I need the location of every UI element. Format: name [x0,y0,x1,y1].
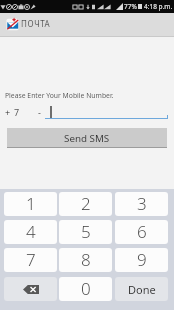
button[interactable]: Done [115,277,168,301]
button[interactable]: 0 [59,277,112,301]
staticText: 77% [124,2,137,11]
button[interactable]: 4 [4,220,57,244]
staticText: 8 [81,248,91,271]
staticText: 0 [81,277,91,300]
staticText: Done [128,282,156,297]
staticText: 4 [26,220,36,243]
staticText: 7 [26,248,36,271]
staticText: 1 [26,192,36,215]
staticText: 6 [137,220,147,243]
staticText: 7 [14,106,20,118]
staticText: 9 [137,248,147,271]
button[interactable]: 1 [4,192,57,216]
staticText: Send SMS [64,132,110,145]
button[interactable]: 9 [115,248,168,272]
button[interactable]: 6 [115,220,168,244]
button[interactable]: Send SMS [7,128,167,148]
staticText: 3 [137,192,147,215]
button[interactable]: 8 [59,248,112,272]
staticText: Please Enter Your Mobile Number. [5,91,114,100]
button[interactable]: 2 [59,192,112,216]
staticText: + [5,106,11,118]
staticText: ПОЧТА [21,18,51,29]
button[interactable]: 3 [115,192,168,216]
button[interactable]: Backspace [4,277,57,301]
button[interactable]: Phone number input [45,104,168,120]
button[interactable]: 7 [4,248,57,272]
staticText: 5 [81,220,91,243]
staticText: - [38,106,41,118]
staticText: 2 [81,192,91,215]
staticText: 4:18 p.m. [144,2,173,11]
button[interactable]: 5 [59,220,112,244]
